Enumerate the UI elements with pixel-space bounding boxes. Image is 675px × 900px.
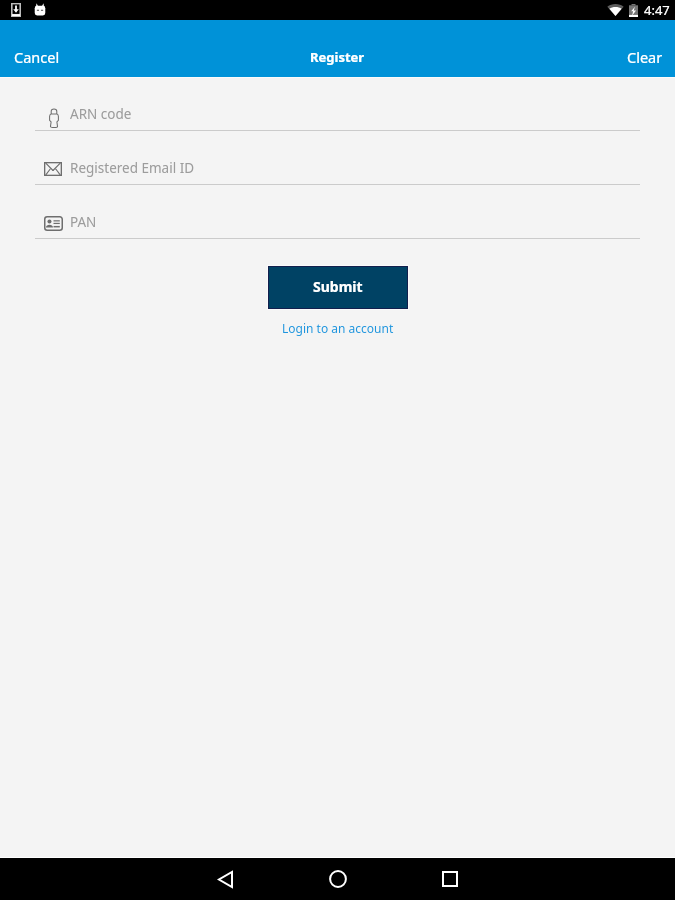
staticText: PAN (70, 213, 97, 231)
button[interactable]: Home (302, 858, 374, 900)
staticText: Clear (627, 47, 663, 67)
button[interactable]: Login to an account (272, 317, 404, 339)
staticText: ARN code (70, 105, 132, 123)
button[interactable]: ARN code (35, 77, 640, 130)
staticText: Register (310, 48, 365, 66)
staticText: 4:47 (644, 1, 670, 19)
button[interactable]: PAN (35, 185, 640, 238)
button[interactable]: Clear (613, 35, 675, 79)
button[interactable]: Recent apps (414, 858, 486, 900)
staticText: Registered Email ID (70, 159, 195, 177)
staticText: Login to an account (282, 320, 394, 336)
staticText: Cancel (14, 47, 60, 67)
staticText: Submit (313, 277, 363, 296)
button[interactable]: Back (189, 858, 261, 900)
button[interactable]: Cancel (0, 35, 74, 79)
button[interactable]: Submit (269, 267, 407, 308)
button[interactable]: Registered Email ID (35, 131, 640, 184)
